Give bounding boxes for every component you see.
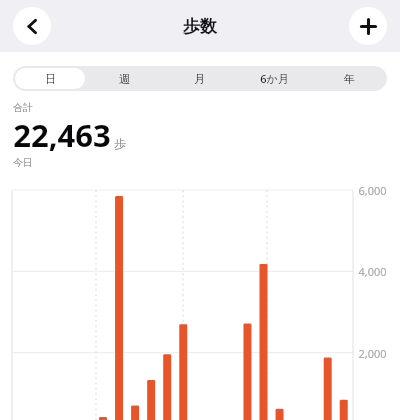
- button[interactable]: 6か月: [239, 68, 310, 89]
- staticText: 歩数: [183, 16, 217, 37]
- button[interactable]: 週: [89, 68, 160, 89]
- button[interactable]: Back: [13, 7, 51, 45]
- staticText: 歩: [114, 136, 126, 151]
- staticText: 22,463: [13, 114, 111, 156]
- button[interactable]: 年: [314, 68, 385, 89]
- button[interactable]: 月: [164, 68, 235, 89]
- staticText: 年: [344, 72, 355, 86]
- staticText: 週: [119, 72, 130, 86]
- staticText: 月: [194, 72, 205, 86]
- staticText: 今日: [13, 156, 33, 169]
- staticText: 日: [45, 72, 56, 86]
- button[interactable]: 日: [15, 68, 85, 89]
- staticText: 合計: [13, 101, 33, 114]
- staticText: 6か月: [260, 71, 289, 86]
- button[interactable]: Add: [349, 7, 387, 45]
- staticText: 4,000: [358, 264, 387, 279]
- staticText: 2,000: [358, 346, 387, 361]
- staticText: 6,000: [358, 183, 387, 198]
